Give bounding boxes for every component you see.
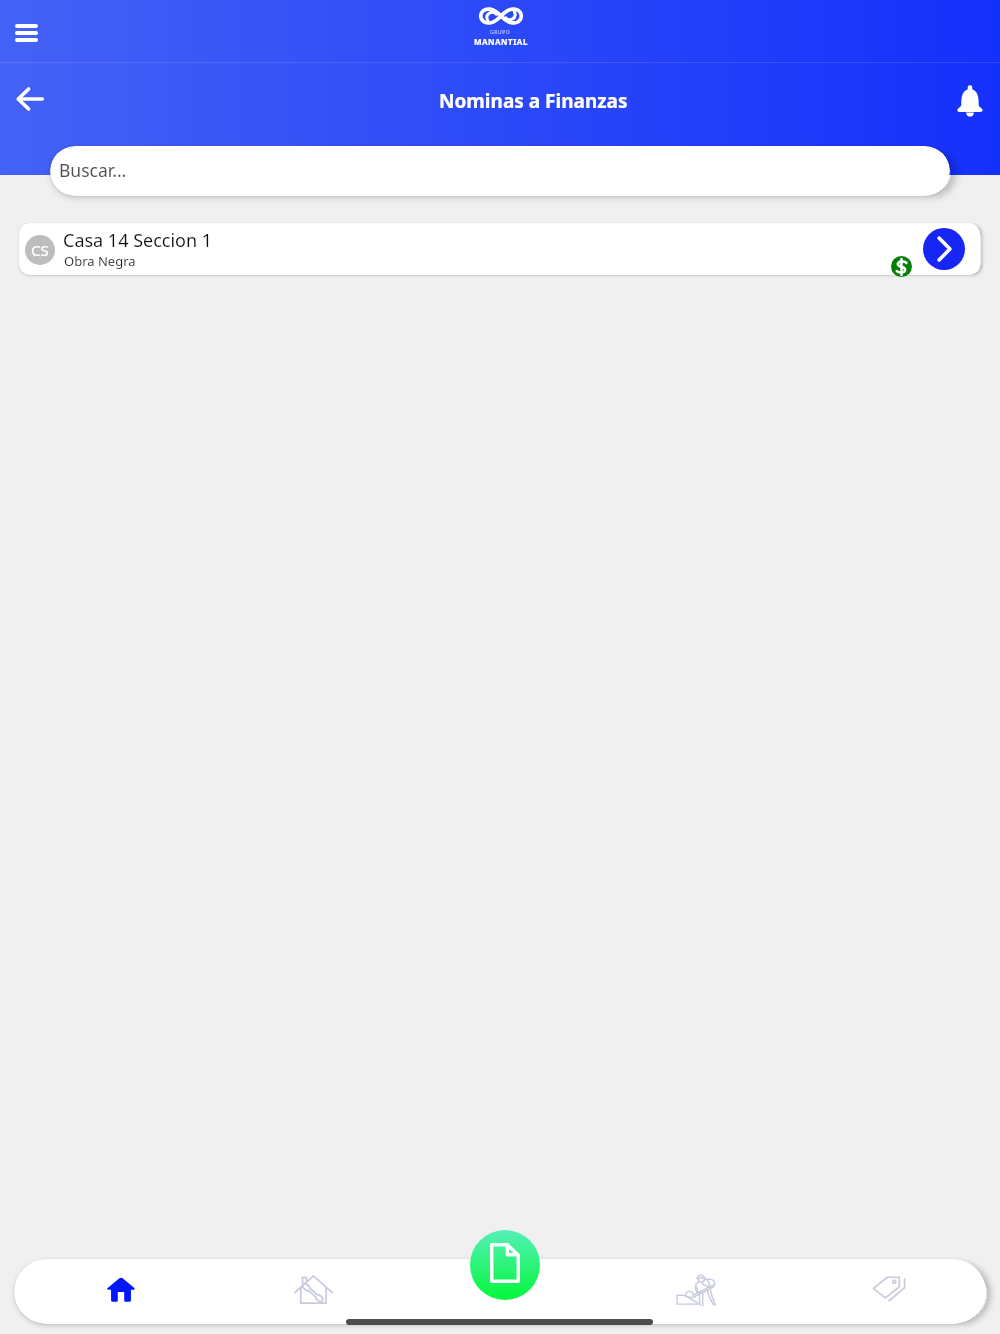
staticText: Obra Negra xyxy=(64,252,136,270)
staticText: GRUPO xyxy=(490,29,511,36)
staticText: Casa 14 Seccion 1 xyxy=(63,228,213,253)
button[interactable]: Obras xyxy=(283,1259,343,1319)
button[interactable]: Nuevo documento xyxy=(470,1230,540,1300)
staticText: MANANTIAL xyxy=(474,36,528,47)
button[interactable]: Home xyxy=(91,1259,151,1319)
button[interactable]: Buscar... xyxy=(50,146,950,196)
button[interactable]: Notifications xyxy=(951,81,989,119)
staticText: CS xyxy=(31,240,49,260)
button[interactable]: Ver detalle xyxy=(923,228,965,270)
button[interactable]: Back xyxy=(11,80,49,118)
button[interactable]: Trabajadores xyxy=(667,1260,727,1320)
button[interactable]: CS xyxy=(19,223,980,275)
button[interactable]: Materiales xyxy=(859,1259,919,1319)
button[interactable]: Menu xyxy=(8,15,44,51)
staticText: Nominas a Finanzas xyxy=(439,88,628,114)
staticText: Buscar... xyxy=(59,158,127,182)
